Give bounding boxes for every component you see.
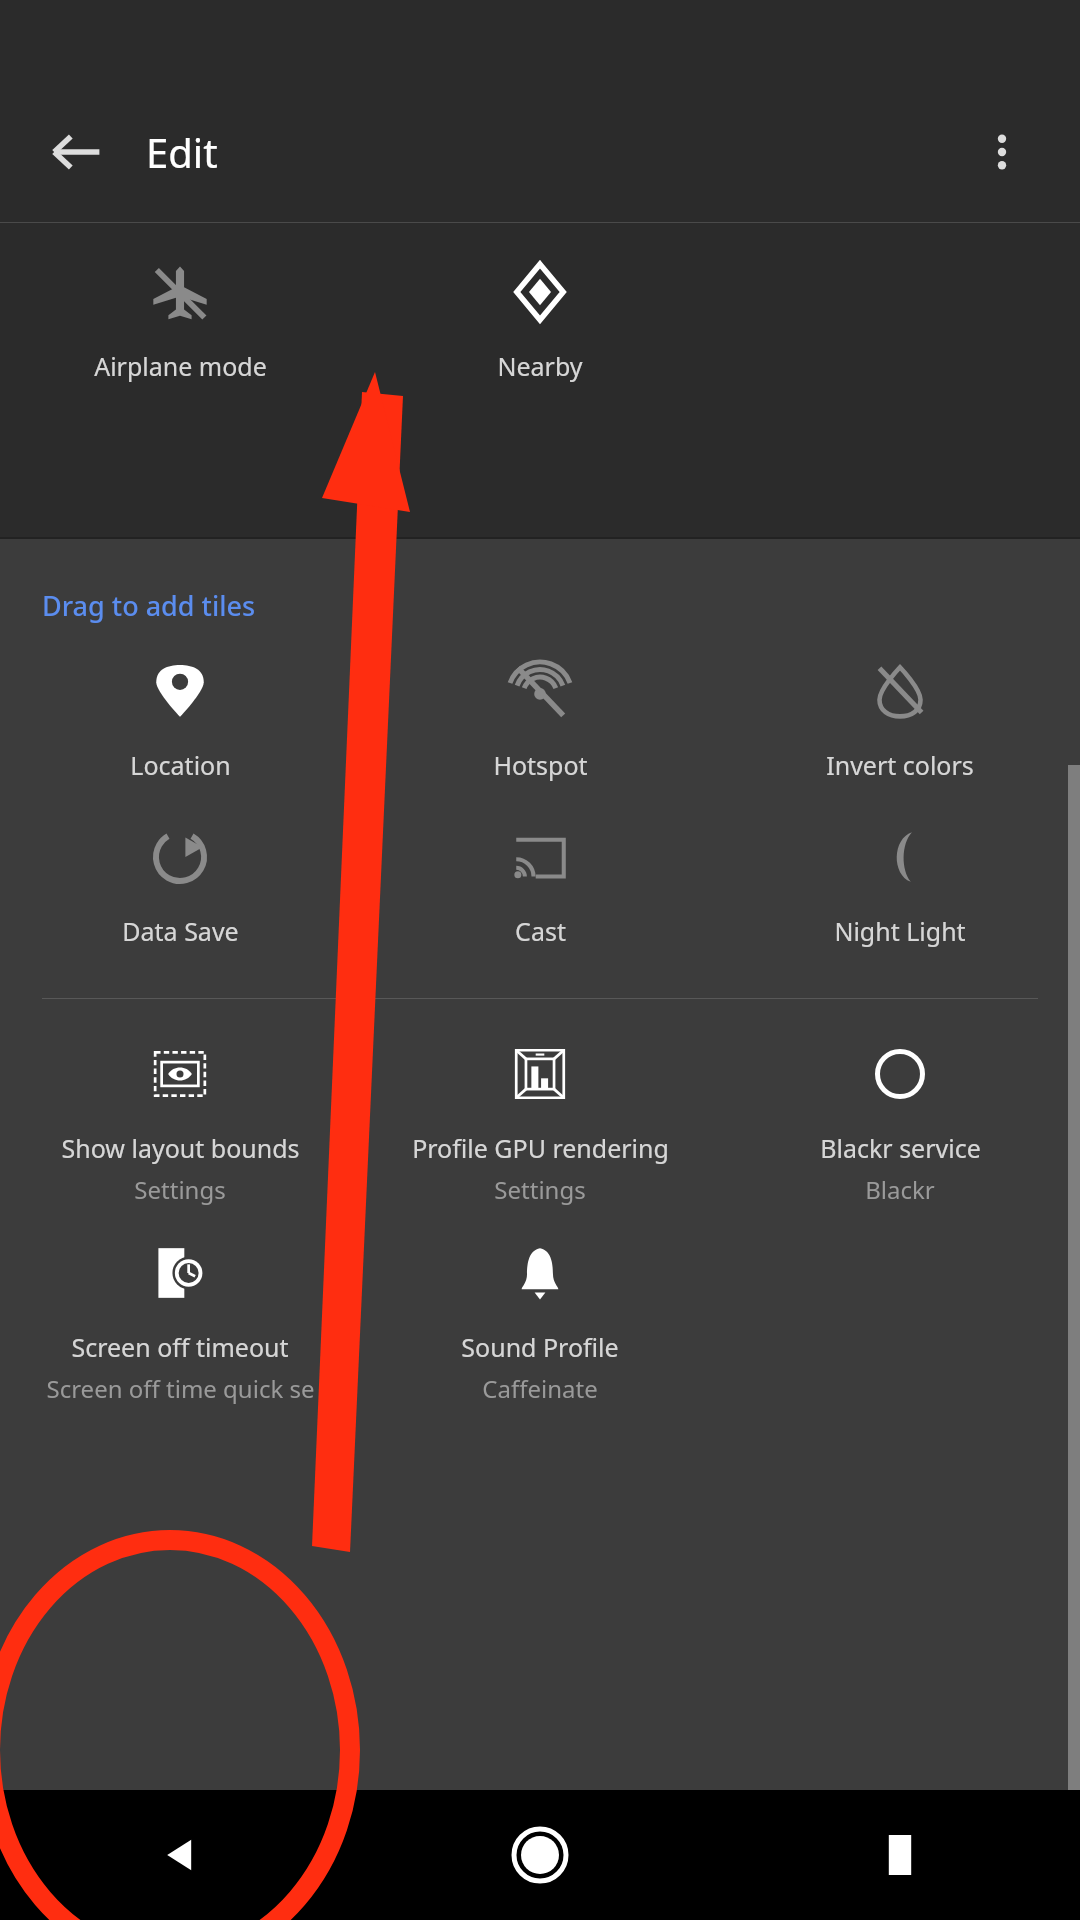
staticText: Caffeinate — [482, 1372, 598, 1405]
staticText: Hotspot — [493, 748, 588, 782]
staticText: Show layout bounds — [61, 1131, 300, 1165]
staticText: Profile GPU rendering — [412, 1131, 669, 1165]
staticText: Screen off timeout — [71, 1330, 289, 1364]
button[interactable]: Home — [360, 1790, 720, 1920]
staticText: Location — [130, 748, 231, 782]
staticText: Blackr service — [820, 1131, 981, 1165]
button[interactable]: Blackr service — [720, 1043, 1080, 1206]
staticText: Airplane mode — [94, 349, 267, 383]
staticText: Nearby — [497, 349, 583, 383]
button[interactable]: Nearby — [360, 261, 720, 383]
staticText: Night Light — [834, 914, 966, 948]
button[interactable]: Hotspot — [360, 660, 720, 782]
button[interactable]: Airplane mode — [0, 261, 360, 383]
button[interactable]: Cast — [360, 826, 720, 948]
staticText: Settings — [134, 1173, 226, 1206]
button[interactable]: Invert colors — [720, 660, 1080, 782]
staticText: Drag to add tiles — [42, 587, 256, 624]
button[interactable]: Show layout bounds — [0, 1043, 360, 1206]
button[interactable]: More options — [954, 104, 1050, 200]
staticText: Cast — [515, 914, 566, 948]
button[interactable]: Sound Profile — [360, 1242, 720, 1405]
button[interactable]: Data Save — [0, 826, 360, 948]
staticText: Invert colors — [826, 748, 974, 782]
staticText: Settings — [494, 1173, 586, 1206]
staticText: Sound Profile — [461, 1330, 619, 1364]
button[interactable]: Night Light — [720, 826, 1080, 948]
staticText: Data Save — [122, 914, 239, 948]
staticText: Edit — [146, 125, 218, 179]
button[interactable]: Back — [0, 1790, 360, 1920]
button[interactable]: Profile GPU rendering — [360, 1043, 720, 1206]
staticText: Blackr — [865, 1173, 935, 1206]
button[interactable]: Screen off timeout — [0, 1242, 360, 1405]
staticText: Screen off time quick se — [46, 1372, 315, 1405]
button[interactable]: Recents — [720, 1790, 1080, 1920]
button[interactable]: Back — [28, 104, 124, 200]
button[interactable]: Location — [0, 660, 360, 782]
